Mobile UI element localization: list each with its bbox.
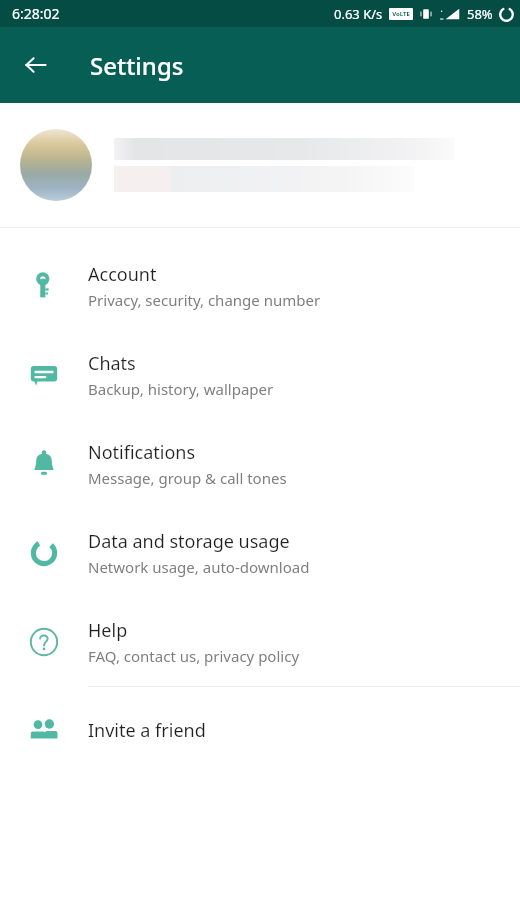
button[interactable] <box>0 103 520 227</box>
staticText: Invite a friend <box>88 718 206 743</box>
staticText: Backup, history, wallpaper <box>88 379 274 399</box>
staticText: Help <box>88 618 128 643</box>
staticText: 0.63 K/s <box>334 5 383 23</box>
staticText: Message, group & call tones <box>88 468 287 488</box>
staticText: Settings <box>90 49 184 82</box>
staticText: Chats <box>88 351 136 376</box>
button[interactable]: Help <box>0 597 520 686</box>
button[interactable]: Account <box>0 241 520 330</box>
staticText: Privacy, security, change number <box>88 290 321 310</box>
staticText: 6:28:02 <box>12 4 60 23</box>
button[interactable]: Data and storage usage <box>0 508 520 597</box>
staticText: 58% <box>467 5 493 23</box>
staticText: Network usage, auto-download <box>88 557 310 577</box>
staticText: Account <box>88 262 157 287</box>
staticText: VoLTE <box>392 10 410 18</box>
button[interactable]: Notifications <box>0 419 520 508</box>
button[interactable]: Chats <box>0 330 520 419</box>
staticText: FAQ, contact us, privacy policy <box>88 646 300 666</box>
staticText: Notifications <box>88 440 196 465</box>
staticText: Data and storage usage <box>88 529 290 554</box>
button[interactable]: Back <box>12 41 60 89</box>
button[interactable]: Invite a friend <box>0 687 520 773</box>
